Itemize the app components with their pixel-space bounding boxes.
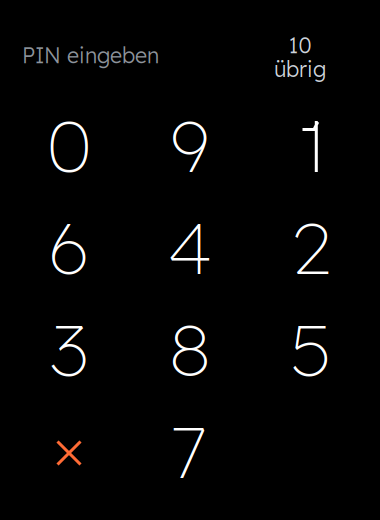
staticText: 8 [169,304,211,394]
staticText: 9 [170,100,210,190]
staticText: übrig [274,56,326,82]
button[interactable]: 8 [129,298,250,400]
staticText: 4 [167,202,212,292]
staticText: 10 [288,32,311,59]
button[interactable]: Delete [8,400,129,502]
staticText: 6 [47,202,90,292]
staticText: 2 [291,202,330,292]
button[interactable]: 6 [8,196,129,298]
staticText: 0 [47,100,91,190]
staticText: 7 [173,406,207,496]
button[interactable]: 7 [129,400,250,502]
button[interactable]: 4 [129,196,250,298]
staticText: 5 [290,304,331,394]
button[interactable]: 3 [8,298,129,400]
button[interactable]: 5 [250,298,371,400]
button[interactable] [250,94,371,196]
staticText: 3 [50,304,88,394]
button[interactable]: 9 [129,94,250,196]
button[interactable]: 0 [8,94,129,196]
button[interactable]: 2 [250,196,371,298]
staticText: PIN eingeben [22,42,159,69]
